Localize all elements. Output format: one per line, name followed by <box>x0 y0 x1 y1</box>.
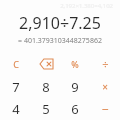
button[interactable]: Multiply <box>92 75 118 98</box>
staticText: 2,192×1.380=4,102 <box>60 2 113 10</box>
button[interactable]: Backspace, delete last digit <box>33 53 59 75</box>
staticText: ÷ <box>102 57 109 72</box>
staticText: 6 <box>71 100 79 118</box>
staticText: 2,910÷7.25 <box>0 12 120 34</box>
staticText: C <box>13 58 19 70</box>
button[interactable]: 2,910÷7.25 <box>0 12 120 34</box>
staticText: × <box>102 80 108 94</box>
staticText: − <box>102 101 109 117</box>
button[interactable]: Four <box>3 98 29 120</box>
staticText: 7 <box>12 78 20 96</box>
staticText: 9 <box>71 78 79 96</box>
staticText: 8 <box>42 78 50 96</box>
staticText: 5 <box>42 100 50 118</box>
staticText: = 401.3793103448275862 <box>0 36 120 46</box>
staticText: 4 <box>12 100 20 118</box>
staticText: % <box>71 58 79 70</box>
button[interactable]: Five <box>33 98 59 120</box>
button[interactable]: Eight <box>33 75 59 98</box>
button[interactable]: Percent <box>62 53 88 75</box>
button[interactable]: Nine <box>62 75 88 98</box>
button[interactable]: Minus <box>92 98 118 120</box>
button[interactable]: Clear <box>3 53 29 75</box>
button[interactable]: Six <box>62 98 88 120</box>
button[interactable]: Seven <box>3 75 29 98</box>
button[interactable]: Divide <box>92 53 118 75</box>
